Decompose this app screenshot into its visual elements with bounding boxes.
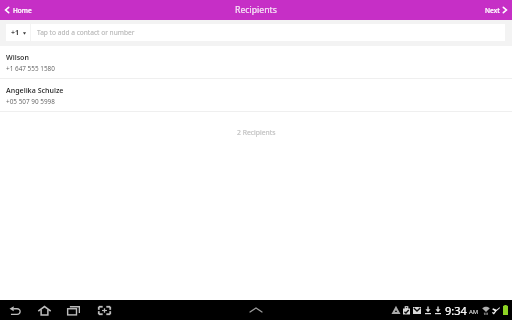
staticText: Recipients (235, 4, 277, 16)
button[interactable]: Wilson (0, 46, 512, 78)
staticText: +1 (11, 28, 20, 38)
staticText: AM (469, 308, 479, 316)
staticText: Home (13, 6, 32, 15)
staticText: Angelika Schulze (6, 86, 64, 96)
button[interactable]: +1 (6, 24, 30, 41)
staticText: 2 Recipients (237, 128, 276, 137)
staticText: 9:34 (445, 303, 467, 318)
staticText: Tap to add a contact or number (37, 28, 135, 37)
staticText: Wilson (6, 53, 29, 63)
button[interactable]: Screenshot (97, 303, 111, 317)
button[interactable]: Home (0, 0, 38, 20)
button[interactable]: Angelika Schulze (0, 79, 512, 111)
button[interactable]: Home (38, 304, 51, 317)
button[interactable]: Next (479, 0, 512, 20)
staticText: Next (485, 6, 500, 15)
button[interactable]: Expand (248, 304, 264, 316)
staticText: +1 647 555 1580 (6, 64, 55, 73)
button[interactable]: Back (9, 304, 22, 317)
button[interactable]: Tap to add a contact or number (31, 24, 505, 41)
button[interactable]: Recent apps (67, 304, 80, 317)
staticText: +05 507 90 5998 (6, 97, 55, 106)
